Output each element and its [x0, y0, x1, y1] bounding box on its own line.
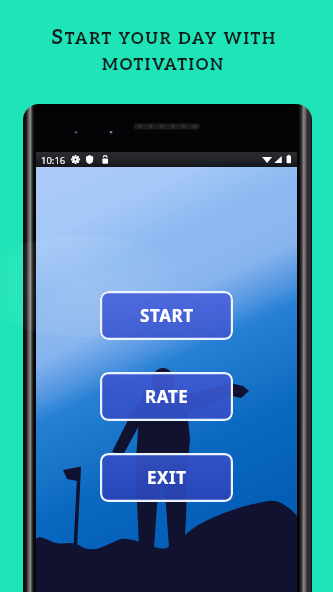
staticText: EXIT: [147, 466, 187, 489]
staticText: MOTIVATION: [102, 55, 225, 74]
staticText: 10:16: [41, 154, 66, 167]
staticText: START YOUR DAY WITH: [51, 25, 277, 50]
staticText: RATE: [145, 385, 189, 408]
button[interactable]: START: [100, 291, 233, 340]
button[interactable]: EXIT: [100, 453, 233, 502]
button[interactable]: RATE: [100, 372, 233, 421]
staticText: START: [140, 304, 194, 327]
